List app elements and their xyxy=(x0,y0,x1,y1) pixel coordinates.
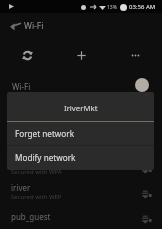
staticText: office_5g xyxy=(11,132,45,143)
button[interactable]: Add network xyxy=(54,40,108,70)
button[interactable]: Refresh xyxy=(0,40,54,70)
staticText: iriver xyxy=(11,182,31,193)
staticText: IriverMkt xyxy=(64,103,98,114)
staticText: 13% xyxy=(107,4,117,11)
button[interactable]: iriver xyxy=(0,179,162,204)
button[interactable]: office_5g xyxy=(0,129,162,154)
button[interactable]: Modify network xyxy=(7,146,154,169)
staticText: Secured with WPA xyxy=(11,118,62,126)
staticText: Wi-Fi xyxy=(24,20,44,32)
staticText: Wi-Fi xyxy=(12,81,31,92)
staticText: Secured with WPA xyxy=(11,168,62,176)
staticText: Forget network xyxy=(15,128,75,139)
button[interactable]: Back xyxy=(0,13,162,38)
button[interactable]: Wi-Fi xyxy=(0,72,162,97)
button[interactable]: AndroidAP xyxy=(0,104,162,129)
staticText: pub_guest xyxy=(11,211,51,222)
staticText: 03:56 AM xyxy=(129,3,156,11)
button[interactable]: pub_guest xyxy=(0,204,162,229)
button[interactable]: More options xyxy=(108,40,162,70)
button[interactable]: guest_net xyxy=(0,154,162,179)
staticText: guest_net xyxy=(11,157,48,168)
button[interactable]: Forget network xyxy=(7,122,154,145)
staticText: Secured with WEP xyxy=(11,193,62,201)
staticText: Modify network xyxy=(15,152,76,163)
